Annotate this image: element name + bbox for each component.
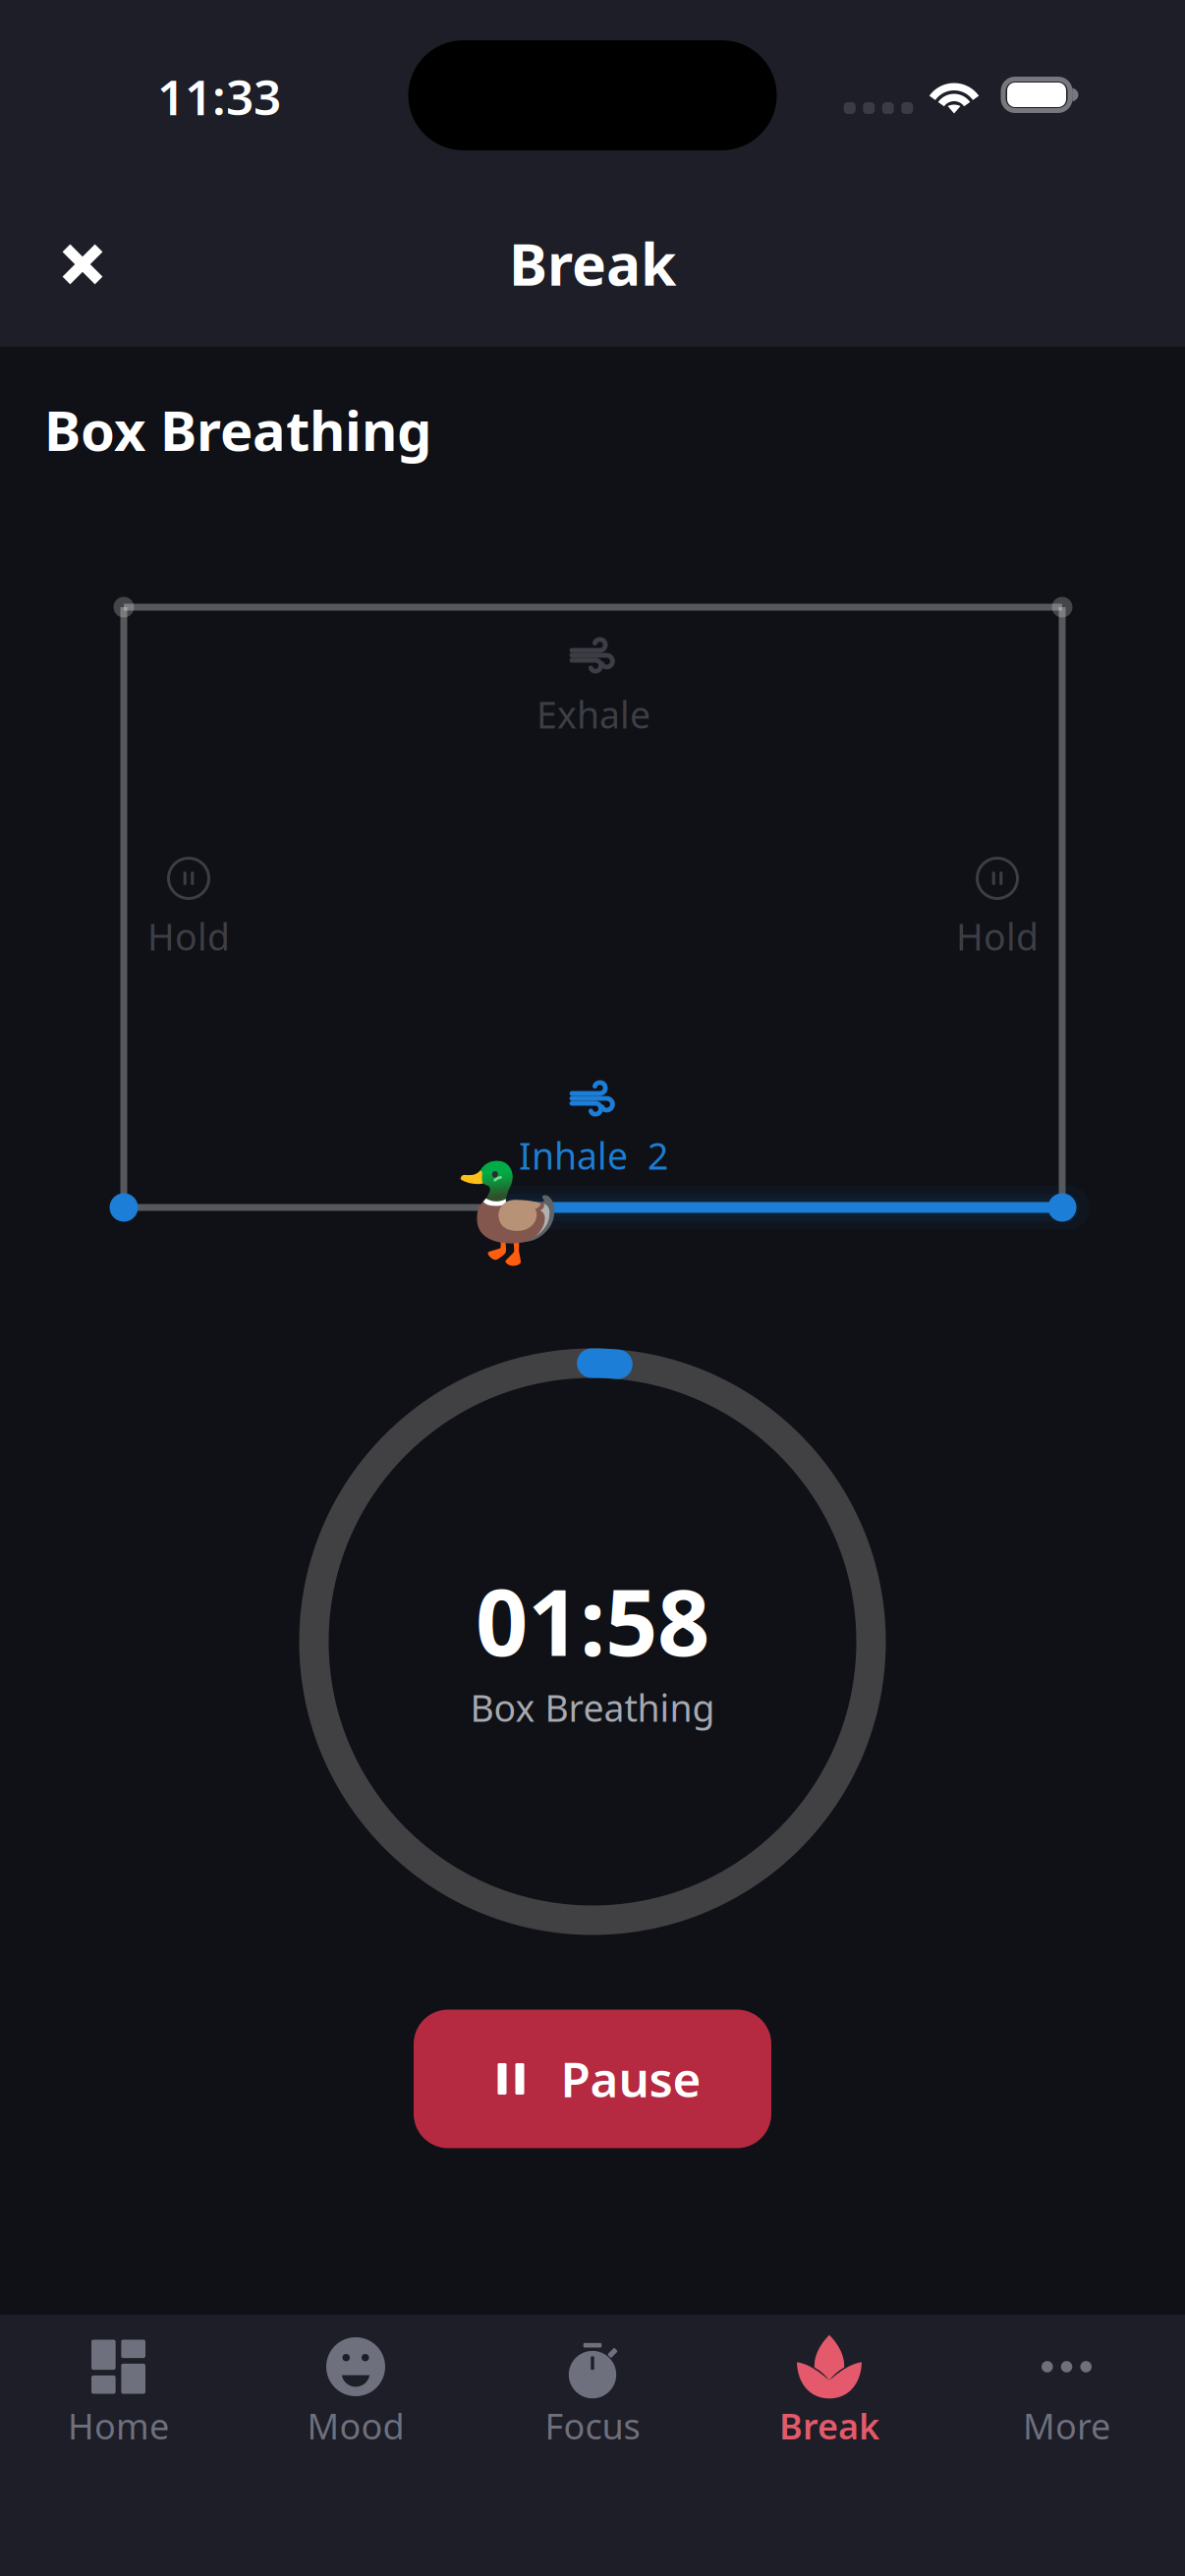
staticText: Break — [509, 225, 676, 302]
button[interactable]: More — [948, 2334, 1185, 2466]
staticText: Exhale — [536, 690, 650, 739]
staticText: 🦆 — [451, 1159, 569, 1266]
staticText: Hold — [956, 912, 1039, 961]
staticText: Focus — [545, 2402, 640, 2449]
button[interactable]: Pause — [414, 2010, 771, 2148]
staticText: Home — [68, 2402, 169, 2449]
button[interactable]: Mood — [237, 2334, 474, 2466]
button[interactable]: Focus — [474, 2334, 711, 2466]
button[interactable]: Home — [0, 2334, 237, 2466]
button[interactable]: Break — [711, 2334, 948, 2466]
staticText: Hold — [147, 912, 230, 961]
staticText: Pause — [561, 2046, 701, 2111]
button[interactable]: Close — [35, 217, 130, 311]
staticText: 11:33 — [157, 64, 281, 128]
staticText: 01:58 — [476, 1559, 709, 1681]
staticText: Inhale 2 — [519, 1131, 668, 1180]
staticText: More — [1023, 2402, 1110, 2449]
staticText: Box Breathing — [470, 1683, 715, 1732]
staticText: Mood — [307, 2402, 404, 2449]
staticText: Break — [779, 2402, 879, 2449]
staticText: Box Breathing — [44, 393, 431, 466]
